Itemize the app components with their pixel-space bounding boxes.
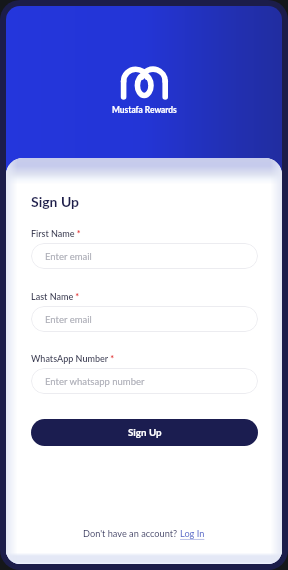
staticText: Enter email (45, 251, 92, 262)
button[interactable]: Enter email (31, 306, 258, 332)
button[interactable]: Enter whatsapp number (31, 368, 258, 394)
button[interactable]: Log In (180, 528, 205, 539)
staticText: Don't have an account? (83, 528, 180, 539)
staticText: First Name * (31, 228, 81, 239)
staticText: Enter email (45, 314, 92, 325)
button[interactable]: Enter email (31, 243, 258, 269)
other: Mustafa Rewards logo (118, 62, 172, 104)
staticText: WhatsApp Number * (31, 353, 115, 364)
staticText: Sign Up (128, 426, 162, 438)
staticText: Mustafa Rewards (112, 105, 177, 115)
staticText: Sign Up (31, 193, 80, 210)
staticText: Last Name * (31, 291, 80, 302)
staticText: Log In (180, 528, 205, 539)
staticText: Enter whatsapp number (45, 376, 145, 387)
button[interactable]: Sign Up (31, 419, 258, 446)
